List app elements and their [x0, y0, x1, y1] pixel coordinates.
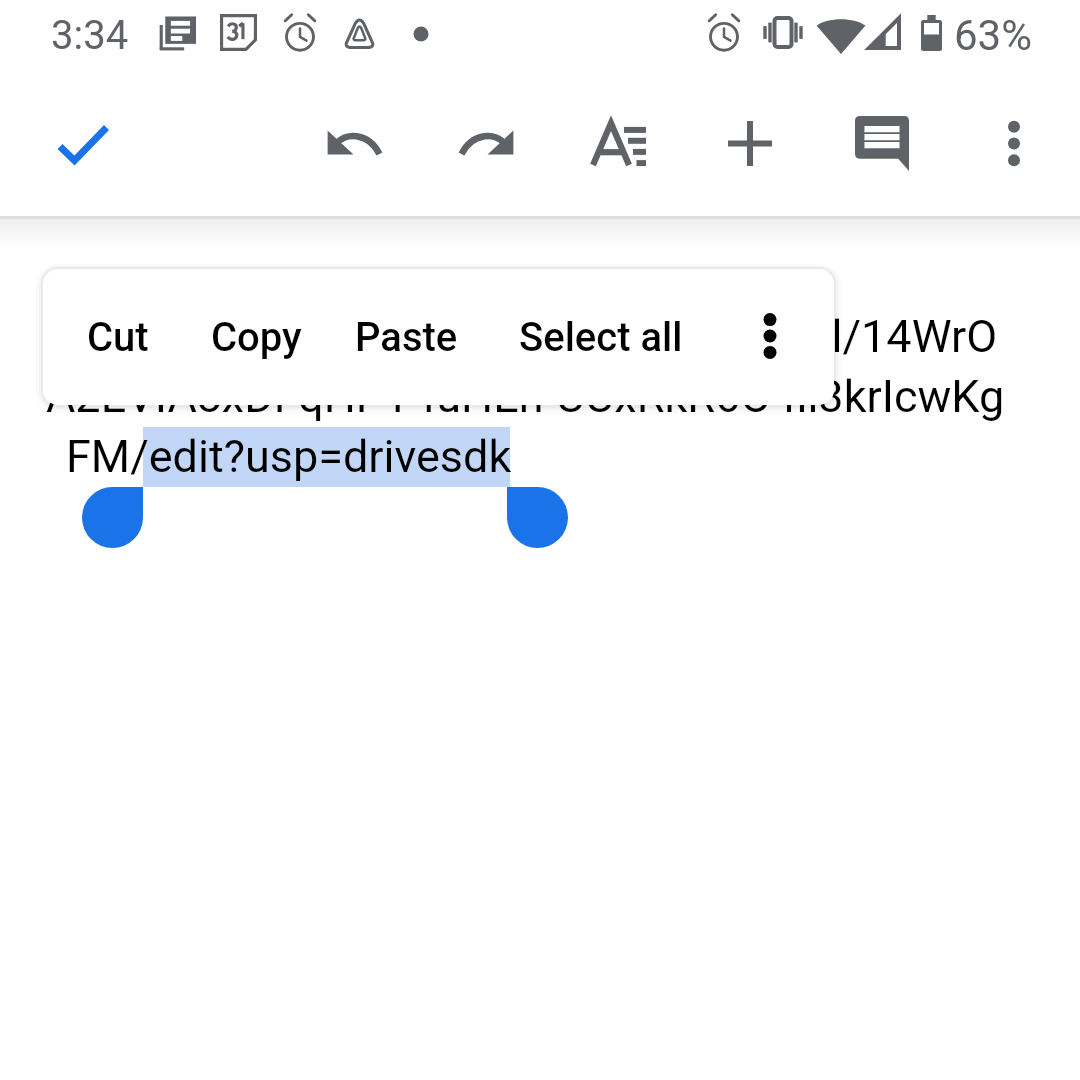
button[interactable]: Comments — [834, 95, 930, 191]
button[interactable]: Insert — [702, 95, 798, 191]
button[interactable]: Redo — [438, 94, 534, 190]
button[interactable]: Text formatting — [570, 95, 666, 191]
staticText: Select all — [519, 314, 683, 361]
button[interactable]: Selection start handle — [82, 487, 143, 548]
staticText: Cut — [87, 314, 149, 361]
staticText: Paste — [355, 314, 458, 361]
staticText: 3:34 — [51, 12, 129, 59]
staticText: FM/edit?usp=drivesdk — [66, 430, 512, 483]
staticText: Copy — [211, 314, 302, 361]
staticText: https://docs.google.com/document/dl/14Wr… — [74, 310, 998, 363]
button[interactable]: Paste — [326, 269, 486, 405]
staticText: A2EVIAoxDFqHPT4uHEh-UUxRkR6O4ll3krIcwKg — [46, 370, 1005, 423]
button[interactable]: Copy — [182, 269, 330, 405]
button[interactable]: Cut — [58, 269, 178, 405]
staticText: 63% — [954, 11, 1032, 60]
button[interactable]: Undo — [306, 94, 402, 190]
button[interactable]: Done — [36, 96, 132, 192]
button[interactable]: Selection end handle — [507, 487, 568, 548]
button[interactable]: More options — [738, 284, 802, 388]
button[interactable]: Select all — [488, 269, 714, 405]
button[interactable]: More options — [966, 95, 1062, 191]
